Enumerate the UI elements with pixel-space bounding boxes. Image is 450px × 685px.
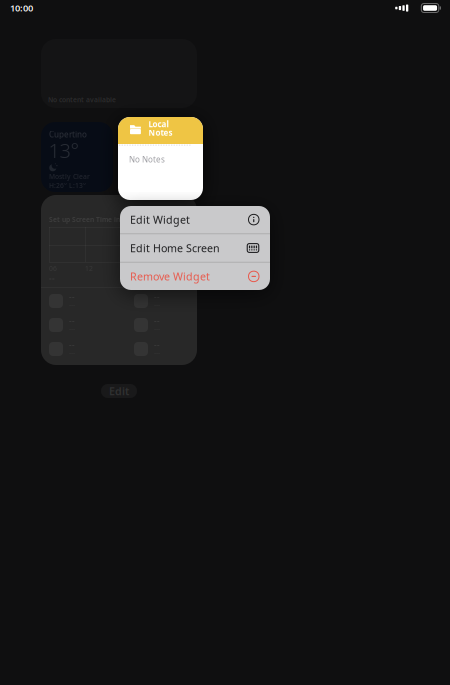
staticText: Cupertino	[49, 129, 87, 140]
staticText: No Notes	[129, 154, 165, 165]
staticText: --	[154, 340, 160, 350]
staticText: 10:00	[10, 2, 33, 14]
staticText: Remove Widget	[130, 269, 210, 283]
staticText: Set up Screen Time in Settings	[49, 215, 149, 224]
staticText: --	[154, 316, 160, 326]
staticText: --	[69, 316, 75, 326]
staticText: Edit Widget	[130, 212, 190, 227]
button[interactable]: Edit	[101, 384, 137, 398]
staticText: --	[69, 340, 75, 350]
staticText: Edit Home Screen	[130, 241, 220, 255]
staticText: 06	[49, 264, 57, 273]
button[interactable]: Remove Widget	[120, 263, 270, 290]
staticText: Edit	[109, 384, 129, 398]
staticText: Local	[148, 119, 168, 129]
staticText: -	[183, 273, 186, 284]
staticText: Mostly Clear	[49, 172, 90, 181]
staticText: Notes	[148, 127, 172, 138]
staticText: --	[69, 292, 75, 302]
staticText: H:26° L:13°	[49, 181, 86, 190]
button[interactable]: Edit Home Screen	[120, 234, 270, 262]
staticText: 12	[85, 264, 93, 273]
staticText: --	[154, 292, 160, 302]
staticText: No content available	[48, 95, 116, 104]
staticText: 13°	[48, 137, 79, 164]
button[interactable]: Edit Widget	[120, 206, 270, 233]
